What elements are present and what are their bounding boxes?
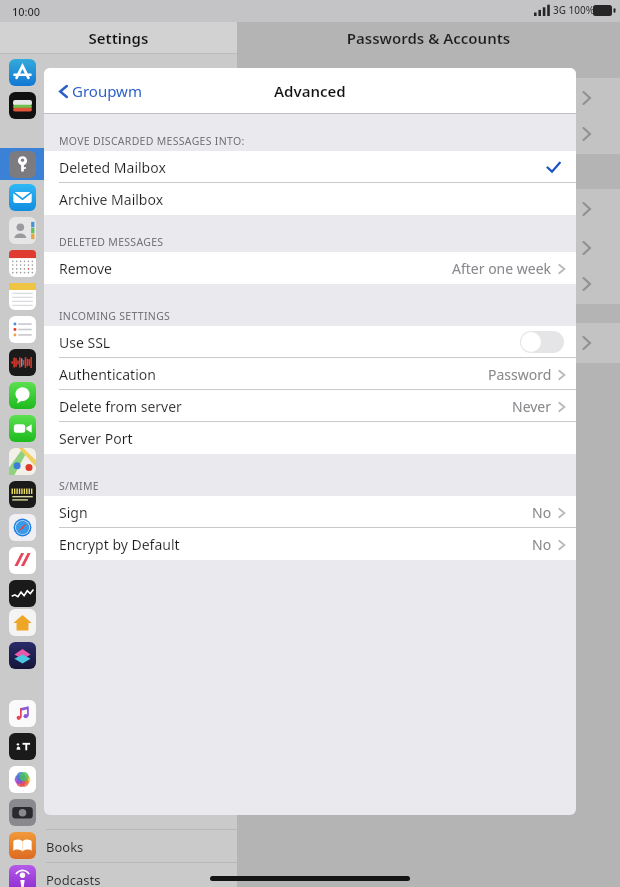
staticText: Sign	[59, 503, 88, 522]
staticText: Authentication	[59, 365, 156, 384]
staticText: S/MIME	[59, 479, 99, 493]
staticText: Groupwm	[72, 81, 142, 101]
staticText: Settings	[0, 28, 237, 48]
staticText: Use SSL	[59, 333, 111, 352]
button[interactable]: Encrypt by Default	[44, 528, 576, 560]
staticText: 3G 100%	[553, 3, 595, 17]
staticText: MOVE DISCARDED MESSAGES INTO:	[59, 134, 245, 148]
staticText: Delete from server	[59, 397, 182, 416]
button[interactable]: Remove	[44, 252, 576, 284]
staticText: Deleted Mailbox	[59, 158, 166, 177]
button[interactable]: Authentication	[44, 358, 576, 390]
staticText: No	[532, 503, 552, 522]
staticText: Advanced	[274, 81, 346, 101]
staticText: Podcasts	[46, 871, 101, 887]
staticText: Password	[488, 365, 552, 384]
staticText: Passwords & Accounts	[237, 28, 620, 48]
button[interactable]: Delete from server	[44, 390, 576, 422]
button[interactable]: Server Port	[44, 422, 576, 454]
staticText: INCOMING SETTINGS	[59, 309, 171, 323]
staticText: Books	[46, 838, 84, 856]
staticText: No	[532, 535, 552, 554]
staticText: 10:00	[12, 4, 41, 19]
button[interactable]: Deleted Mailbox	[44, 151, 576, 183]
staticText: DELETED MESSAGES	[59, 235, 164, 249]
staticText: Archive Mailbox	[59, 190, 164, 209]
other: Use SSL toggle off	[520, 331, 564, 353]
staticText: Encrypt by Default	[59, 535, 180, 554]
staticText: Server Port	[59, 429, 133, 448]
staticText: Never	[512, 397, 552, 416]
button[interactable]: Sign	[44, 496, 576, 528]
button[interactable]: Use SSL	[44, 326, 576, 358]
staticText: Remove	[59, 259, 112, 278]
staticText: After one week	[452, 259, 552, 278]
button[interactable]: Groupwm	[54, 75, 146, 107]
button[interactable]: Archive Mailbox	[44, 183, 576, 215]
